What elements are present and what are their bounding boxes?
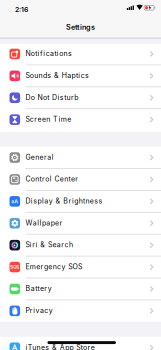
staticText: Siri & Search <box>25 240 73 249</box>
button[interactable]: Notifications <box>0 43 161 65</box>
staticText: Settings <box>66 23 95 31</box>
button[interactable]: aA <box>0 190 161 212</box>
button[interactable]: iTunes & App Store <box>0 337 161 350</box>
button[interactable]: General <box>0 147 161 168</box>
button[interactable]: SOS <box>0 256 161 278</box>
staticText: Emergency SOS <box>25 262 82 271</box>
staticText: Control Center <box>25 175 78 183</box>
staticText: 2:16 <box>15 5 28 14</box>
staticText: General <box>25 153 54 161</box>
button[interactable]: Sounds & Haptics <box>0 65 161 87</box>
staticText: Display & Brightness <box>25 197 103 205</box>
staticText: iTunes & App Store <box>25 343 95 350</box>
staticText: Battery <box>25 284 52 293</box>
staticText: SOS <box>10 264 19 270</box>
button[interactable]: Siri & Search <box>0 234 161 256</box>
button[interactable]: Do Not Disturb <box>0 87 161 109</box>
button[interactable]: Wallpaper <box>0 212 161 234</box>
staticText: Sounds & Haptics <box>25 71 89 80</box>
button[interactable]: Battery <box>0 278 161 300</box>
staticText: Notifications <box>25 49 72 58</box>
button[interactable]: Control Center <box>0 168 161 190</box>
staticText: Wallpaper <box>25 219 62 227</box>
staticText: aA <box>11 198 18 204</box>
button[interactable]: Screen Time <box>0 109 161 131</box>
staticText: Privacy <box>25 306 53 315</box>
staticText: Screen Time <box>25 115 71 123</box>
staticText: Do Not Disturb <box>25 93 78 102</box>
button[interactable]: Privacy <box>0 300 161 322</box>
